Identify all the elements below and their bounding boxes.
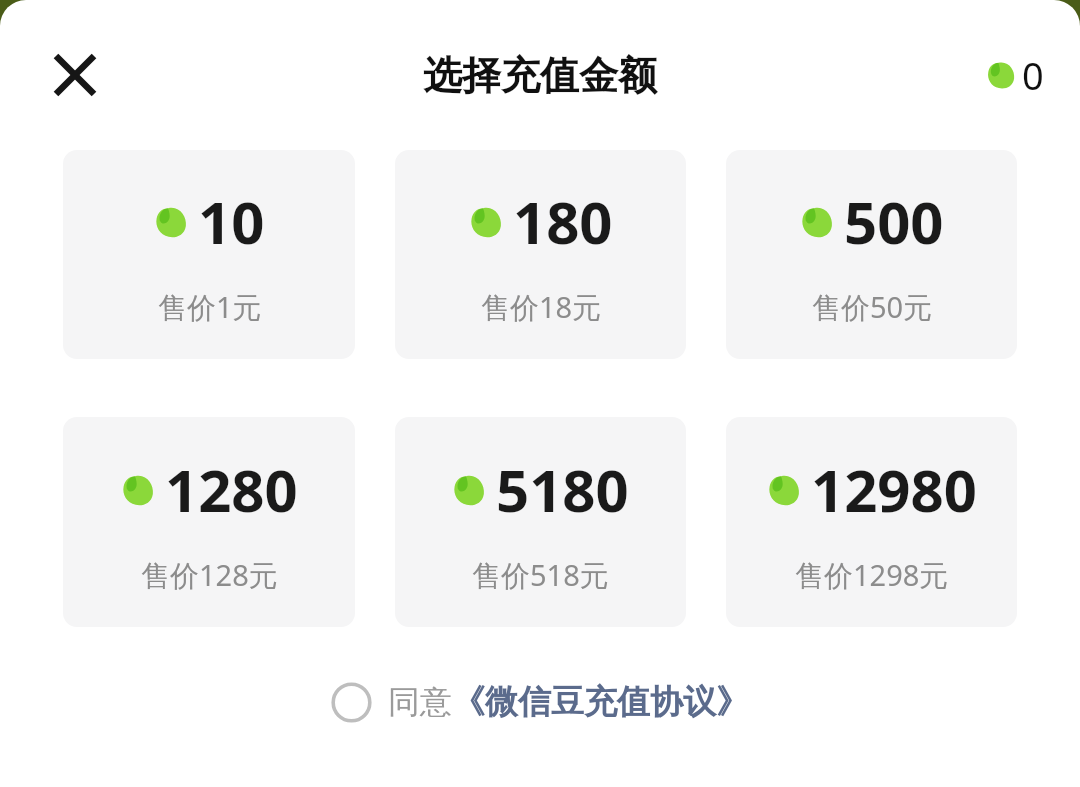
staticText: 售价50元 [812,287,933,327]
staticText: 售价128元 [141,555,278,595]
staticText: 180 [513,182,613,261]
staticText: 选择充值金额 [423,51,657,100]
staticText: 0 [1022,49,1044,101]
staticText: 同意 [388,682,452,722]
button[interactable]: 10 [63,150,355,359]
button[interactable]: 0 [986,49,1044,101]
staticText: 10 [198,182,265,261]
button[interactable]: 1280 [63,417,355,627]
staticText: 5180 [496,450,629,529]
button[interactable]: 同意 [331,681,749,723]
button[interactable]: 《微信豆充值协议》 [452,681,749,723]
button[interactable]: Close [40,40,110,110]
staticText: 1280 [165,450,298,529]
button[interactable]: 500 [726,150,1017,359]
button[interactable]: 12980 [726,417,1017,627]
staticText: 售价18元 [481,287,602,327]
staticText: 售价1298元 [795,555,949,595]
staticText: 售价518元 [472,555,609,595]
button[interactable]: 5180 [395,417,686,627]
staticText: 500 [844,182,944,261]
staticText: 售价1元 [158,287,262,327]
staticText: 12980 [811,450,977,529]
button[interactable]: 180 [395,150,686,359]
